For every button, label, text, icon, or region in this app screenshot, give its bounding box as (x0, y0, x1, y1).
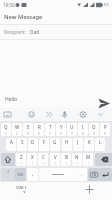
staticText: M (86, 154, 91, 160)
staticText: P (104, 124, 107, 130)
staticText: ! (77, 162, 78, 166)
button[interactable]: K (84, 138, 94, 151)
staticText: 1 (5, 132, 7, 136)
button[interactable]: H (62, 138, 72, 151)
button[interactable] (39, 168, 76, 181)
button[interactable]: EN (88, 168, 99, 181)
button[interactable]: C (38, 153, 48, 166)
button[interactable] (95, 153, 112, 166)
staticText: New Message (4, 13, 43, 21)
staticText: ' (100, 147, 101, 151)
button[interactable]: Y (56, 123, 66, 136)
staticText: L (99, 139, 102, 145)
staticText: N (75, 154, 79, 160)
button[interactable]: ~\ (1, 168, 14, 181)
staticText: Q (4, 124, 8, 130)
staticText: ' (67, 147, 68, 151)
staticText: S (21, 139, 24, 145)
button[interactable]: R (34, 123, 44, 136)
staticText: 0 (104, 132, 106, 136)
staticText: ' (11, 147, 12, 151)
button[interactable]: Z (16, 153, 26, 166)
button[interactable]: O (89, 123, 99, 136)
staticText: B (65, 154, 68, 160)
staticText: ! (55, 162, 56, 166)
staticText: . (81, 171, 83, 178)
staticText: 3 (27, 132, 29, 136)
staticText: ' (78, 147, 79, 151)
button[interactable]: M (83, 153, 93, 166)
staticText: U (70, 124, 74, 130)
button[interactable]: W (12, 123, 22, 136)
staticText: ' (33, 147, 34, 151)
staticText: ~\ (6, 169, 10, 174)
staticText: ! (21, 162, 22, 166)
button[interactable]: V (50, 153, 60, 166)
staticText: ' (55, 147, 56, 151)
staticText: T (49, 124, 52, 130)
staticText: Y (60, 124, 63, 130)
staticText: H (65, 139, 69, 145)
staticText: ' (89, 147, 90, 151)
button[interactable]: B (61, 153, 71, 166)
button[interactable] (97, 97, 111, 110)
button[interactable] (1, 153, 15, 166)
staticText: X (31, 154, 34, 160)
staticText: , (32, 171, 34, 178)
staticText: E (27, 124, 30, 130)
staticText: V (54, 154, 57, 160)
button[interactable]: S (17, 138, 27, 151)
staticText: 5 (49, 132, 51, 136)
button[interactable]: L (95, 138, 105, 151)
staticText: ' (22, 147, 23, 151)
staticText: Hello (5, 96, 18, 103)
staticText: G (53, 139, 57, 145)
button[interactable]: . (76, 168, 87, 181)
staticText: 53 (104, 2, 109, 7)
button[interactable]: U (67, 123, 77, 136)
staticText: R (38, 124, 41, 130)
staticText: 9 (93, 132, 95, 136)
staticText: Recipient: (4, 29, 27, 36)
staticText: 123 (17, 172, 24, 177)
staticText: 4 (38, 132, 40, 136)
staticText: ' (44, 147, 45, 151)
staticText: A (10, 139, 13, 145)
staticText: K (88, 139, 91, 145)
button[interactable]: T (45, 123, 55, 136)
staticText: 2 (16, 132, 18, 136)
button[interactable]: Q (1, 123, 11, 136)
button[interactable]: D (28, 138, 38, 151)
staticText: W (15, 124, 20, 130)
button[interactable]: E (23, 123, 33, 136)
button[interactable]: A (6, 138, 16, 151)
staticText: D (31, 139, 35, 145)
button[interactable]: I (78, 123, 88, 136)
staticText: ! (43, 162, 44, 166)
staticText: ! (66, 162, 67, 166)
staticText: 7 (71, 132, 73, 136)
button[interactable]: SIM 1 (16, 184, 32, 194)
button[interactable]: 123 (14, 168, 26, 181)
staticText: I (82, 124, 84, 130)
button[interactable] (0, 25, 112, 39)
staticText: C (42, 154, 45, 160)
staticText: EN (92, 173, 97, 177)
button[interactable]: P (100, 123, 110, 136)
button[interactable]: N (72, 153, 82, 166)
button[interactable]: F (39, 138, 49, 151)
staticText: 19:50 (3, 2, 15, 8)
button[interactable] (99, 168, 112, 181)
button[interactable]: , (27, 168, 38, 181)
staticText: O (92, 124, 96, 130)
staticText: 8 (82, 132, 84, 136)
staticText: F (43, 139, 46, 145)
button[interactable]: J (73, 138, 83, 151)
staticText: ! (88, 162, 89, 166)
staticText: J (77, 139, 79, 145)
button[interactable]: X (27, 153, 37, 166)
staticText: Dad (30, 29, 40, 36)
staticText: 6 (60, 132, 62, 136)
button[interactable]: G (50, 138, 60, 151)
button[interactable] (84, 184, 95, 195)
